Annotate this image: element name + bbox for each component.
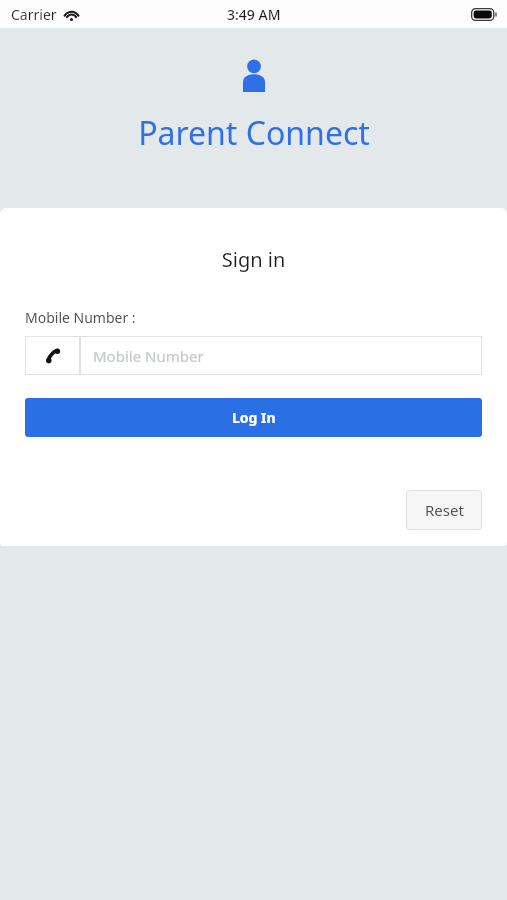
staticText: Parent Connect bbox=[138, 111, 370, 155]
other: Phone bbox=[44, 347, 62, 365]
staticText: Carrier bbox=[11, 5, 57, 24]
button[interactable]: Mobile Number bbox=[80, 336, 482, 375]
button[interactable]: Log In bbox=[25, 398, 482, 437]
staticText: 3:49 AM bbox=[227, 5, 281, 24]
staticText: Sign in bbox=[0, 246, 507, 273]
staticText: Reset bbox=[425, 500, 464, 520]
staticText: Mobile Number bbox=[93, 346, 204, 366]
staticText: Log In bbox=[232, 408, 276, 427]
button[interactable]: Reset bbox=[406, 490, 482, 530]
staticText: Mobile Number : bbox=[25, 308, 136, 327]
